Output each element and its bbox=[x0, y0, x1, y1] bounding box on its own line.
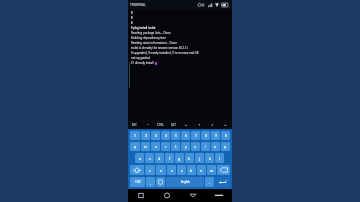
staticText: f bbox=[169, 156, 171, 161]
staticText: b bbox=[190, 168, 193, 173]
staticText: Reading package lists... Done bbox=[131, 31, 171, 35]
button[interactable]: t bbox=[171, 142, 180, 151]
button[interactable]: ~ bbox=[141, 120, 154, 129]
button[interactable]: ↓ bbox=[206, 120, 219, 129]
staticText: q bbox=[134, 144, 137, 149]
staticText: ← bbox=[185, 123, 188, 126]
staticText: 5 bbox=[175, 133, 177, 138]
staticText: ?123 bbox=[135, 180, 141, 184]
staticText: h bbox=[188, 156, 191, 161]
staticText: j bbox=[199, 156, 200, 161]
button[interactable]: . bbox=[205, 177, 214, 187]
staticText: $ l already install bbox=[131, 61, 154, 65]
button[interactable]: b bbox=[187, 165, 196, 175]
staticText: 0 upgraded, 0 newly installed, 0 to remo… bbox=[131, 51, 199, 55]
staticText: c bbox=[171, 168, 173, 173]
staticText: ~ bbox=[147, 123, 149, 127]
button[interactable]: y bbox=[181, 142, 190, 151]
button[interactable]: 8 bbox=[201, 131, 210, 140]
button[interactable]: 9 bbox=[211, 131, 220, 140]
button[interactable]: Emoji bbox=[156, 177, 165, 187]
button[interactable]: Back bbox=[180, 189, 206, 202]
button[interactable]: j bbox=[195, 153, 204, 163]
button[interactable]: ALT bbox=[167, 120, 180, 129]
staticText: m bbox=[210, 168, 214, 173]
button[interactable]: 4 bbox=[161, 131, 170, 140]
button[interactable]: 3 bbox=[151, 131, 160, 140]
button[interactable]: → bbox=[219, 120, 232, 129]
staticText: l bbox=[219, 156, 220, 161]
button[interactable]: x bbox=[156, 165, 166, 175]
staticText: ESC bbox=[132, 123, 138, 127]
staticText: 4 bbox=[165, 133, 167, 138]
staticText: $ bbox=[131, 11, 133, 15]
staticText: 3 bbox=[155, 133, 157, 138]
staticText: o bbox=[214, 144, 217, 149]
button[interactable]: ↑ bbox=[193, 120, 206, 129]
staticText: y bbox=[185, 144, 187, 149]
button[interactable]: 2 bbox=[141, 131, 150, 140]
staticText: n bbox=[200, 168, 203, 173]
staticText: $ pkg install tsclat bbox=[131, 26, 156, 30]
button[interactable]: 6 bbox=[181, 131, 190, 140]
staticText: 8 bbox=[205, 133, 207, 138]
staticText: 6 bbox=[185, 133, 187, 138]
button[interactable]: o bbox=[211, 142, 220, 151]
button[interactable]: u bbox=[191, 142, 200, 151]
button[interactable]: i bbox=[201, 142, 210, 151]
staticText: ↑ bbox=[198, 123, 201, 126]
staticText: i bbox=[205, 144, 206, 149]
button[interactable]: Backspace bbox=[217, 165, 230, 175]
button[interactable]: w bbox=[141, 142, 150, 151]
button[interactable]: e bbox=[151, 142, 160, 151]
staticText: Building dependency tree bbox=[131, 36, 166, 40]
button[interactable]: Shift bbox=[130, 165, 144, 175]
staticText: k bbox=[209, 156, 211, 161]
staticText: , bbox=[150, 180, 151, 185]
button[interactable]: ESC bbox=[128, 120, 141, 129]
staticText: 1 bbox=[134, 133, 136, 138]
button[interactable]: m bbox=[207, 165, 216, 175]
button[interactable]: z bbox=[145, 165, 155, 175]
button[interactable]: Home bbox=[154, 189, 180, 202]
staticText: Reading state information... Done bbox=[131, 41, 177, 45]
button[interactable]: Keyboard bbox=[206, 189, 232, 202]
button[interactable]: a bbox=[135, 153, 144, 163]
staticText: a bbox=[139, 156, 141, 161]
button[interactable]: 5 bbox=[171, 131, 180, 140]
button[interactable]: ?123 bbox=[130, 177, 145, 187]
button[interactable]: ← bbox=[180, 120, 193, 129]
button[interactable]: c bbox=[167, 165, 176, 175]
button[interactable]: k bbox=[205, 153, 214, 163]
staticText: p bbox=[224, 144, 227, 149]
button[interactable]: Recents bbox=[128, 189, 154, 202]
staticText: s bbox=[149, 156, 151, 161]
button[interactable]: q bbox=[130, 142, 140, 151]
staticText: English bbox=[181, 180, 190, 184]
button[interactable]: English bbox=[166, 177, 204, 187]
staticText: u bbox=[194, 144, 197, 149]
button[interactable]: p bbox=[221, 142, 230, 151]
button[interactable]: d bbox=[155, 153, 164, 163]
button[interactable]: n bbox=[197, 165, 206, 175]
staticText: w bbox=[144, 144, 147, 149]
button[interactable]: f bbox=[165, 153, 174, 163]
staticText: ALT bbox=[171, 123, 176, 127]
button[interactable]: Enter bbox=[215, 177, 230, 187]
button[interactable]: CTRL bbox=[154, 120, 167, 129]
button[interactable]: 7 bbox=[191, 131, 200, 140]
button[interactable]: r bbox=[161, 142, 170, 151]
button[interactable]: h bbox=[185, 153, 194, 163]
staticText: tsclat is already the newest version (0.… bbox=[131, 46, 189, 50]
staticText: TERMINAL bbox=[130, 3, 146, 7]
staticText: g bbox=[178, 156, 181, 161]
button[interactable]: l bbox=[215, 153, 224, 163]
button[interactable]: 1 bbox=[130, 131, 140, 140]
button[interactable]: g bbox=[175, 153, 184, 163]
button[interactable]: , bbox=[146, 177, 155, 187]
staticText: 7 bbox=[195, 133, 197, 138]
button[interactable]: s bbox=[145, 153, 154, 163]
staticText: $ bbox=[131, 21, 133, 25]
button[interactable]: 0 bbox=[221, 131, 230, 140]
button[interactable]: v bbox=[177, 165, 186, 175]
